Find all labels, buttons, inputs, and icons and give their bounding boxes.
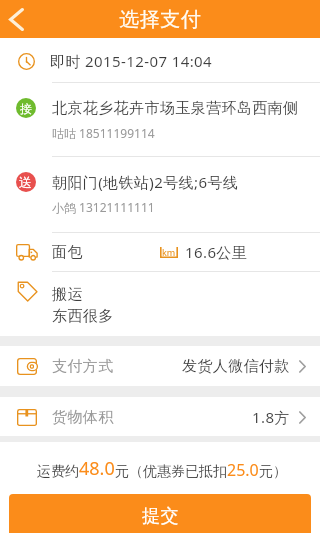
staticText: 货物体积 (52, 408, 114, 427)
button[interactable]: 即时 2015-12-07 14:04 (0, 38, 320, 82)
button[interactable]: Back (0, 0, 32, 38)
button[interactable]: 支付方式 (0, 346, 320, 386)
staticText: km (162, 246, 176, 257)
staticText: 元（优惠券已抵扣 (115, 463, 227, 481)
staticText: 朝阳门(地铁站)2号线;6号线 (52, 172, 239, 192)
staticText: 送 (19, 174, 33, 190)
staticText: 接 (20, 101, 33, 116)
staticText: 小鸽 13121111111 (52, 199, 155, 215)
button[interactable]: 送 (0, 157, 320, 232)
staticText: 运费约 (37, 463, 79, 481)
button[interactable]: 货物体积 (0, 397, 320, 437)
staticText: 1.8方 (252, 407, 290, 427)
staticText: 面包 (52, 243, 83, 262)
staticText: 咕咕 18511199114 (52, 125, 155, 141)
staticText: 北京花乡花卉市场玉泉营环岛西南侧 (52, 99, 299, 118)
staticText: 即时 2015-12-07 14:04 (50, 51, 213, 71)
staticText: 选择支付 (119, 7, 201, 32)
staticText: 发货人微信付款 (182, 357, 290, 376)
staticText: 48.0 (79, 456, 115, 481)
staticText: 16.6公里 (185, 242, 248, 262)
staticText: 提交 (142, 505, 179, 528)
staticText: 东西很多 (52, 307, 114, 326)
button[interactable]: 接 (0, 83, 320, 156)
staticText: 25.0 (227, 459, 259, 481)
staticText: 元） (259, 463, 287, 481)
button[interactable]: 提交 (9, 494, 311, 533)
staticText: 支付方式 (52, 357, 114, 376)
staticText: 搬运 (52, 285, 83, 304)
